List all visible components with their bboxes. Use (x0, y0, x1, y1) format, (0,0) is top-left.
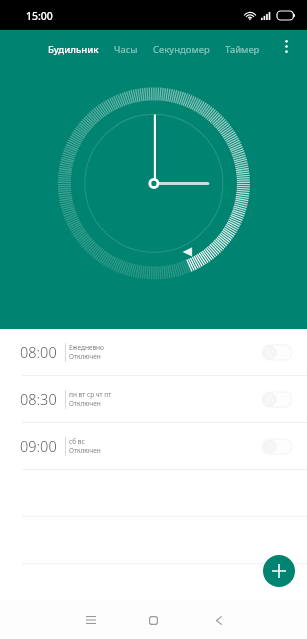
button[interactable]: Home (137, 604, 169, 636)
button[interactable]: Back (203, 604, 235, 636)
button[interactable]: 08:00 (0, 329, 307, 375)
button[interactable]: More options (275, 35, 297, 57)
staticText: Отключен (69, 352, 101, 361)
staticText: 08:30 (20, 389, 57, 409)
button[interactable]: Add alarm (263, 555, 295, 587)
staticText: 15:00 (26, 9, 53, 23)
staticText: Отключен (69, 446, 101, 455)
staticText: 08:00 (20, 342, 57, 362)
staticText: пн вт ср чт пт (69, 390, 112, 399)
button[interactable]: 09:00 (0, 423, 307, 469)
button[interactable]: Toggle alarm (262, 439, 292, 454)
button[interactable]: Часы (110, 37, 142, 62)
button[interactable]: Таймер (221, 37, 264, 62)
button[interactable]: Toggle alarm (262, 345, 292, 360)
staticText: сб вс (69, 437, 85, 446)
staticText: Ежедневно (69, 343, 104, 352)
button[interactable]: Recents (75, 604, 107, 636)
staticText: Таймер (225, 43, 260, 56)
staticText: Будильник (48, 43, 99, 56)
staticText: 09:00 (20, 436, 57, 456)
button[interactable]: 08:30 (0, 376, 307, 422)
staticText: Отключен (69, 399, 101, 408)
button[interactable]: Секундомер (149, 37, 214, 62)
button[interactable]: Toggle alarm (262, 392, 292, 407)
staticText: Часы (114, 43, 138, 56)
button[interactable]: Будильник (44, 37, 103, 62)
staticText: Секундомер (153, 43, 210, 56)
